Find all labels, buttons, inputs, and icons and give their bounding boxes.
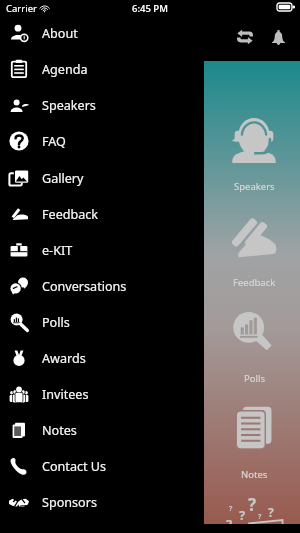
staticText: e-KIT	[42, 242, 73, 259]
button[interactable]: Feedback	[0, 196, 300, 232]
staticText: Agenda	[42, 61, 88, 78]
button[interactable]: Notes	[0, 412, 300, 448]
button[interactable]: Contact Us	[0, 448, 300, 484]
staticText: Feedback	[233, 276, 276, 289]
staticText: Polls	[42, 314, 70, 331]
button[interactable]: Polls	[204, 309, 300, 405]
staticText: ?	[226, 515, 233, 524]
button[interactable]: About	[0, 15, 300, 51]
staticText: Awards	[42, 350, 86, 367]
button[interactable]: Invitees	[0, 376, 300, 412]
button[interactable]: ?	[204, 501, 300, 524]
button[interactable]: Gallery	[0, 160, 300, 196]
button[interactable]: Agenda	[0, 51, 300, 87]
staticText: FAQ	[42, 133, 66, 150]
staticText: Contact Us	[42, 458, 107, 475]
staticText: 6:45 PM	[132, 2, 168, 15]
staticText: Speakers	[234, 180, 275, 193]
button[interactable]: e-KIT	[0, 232, 300, 268]
button[interactable]: Refresh	[237, 29, 253, 45]
button[interactable]: Sponsors	[0, 484, 300, 520]
staticText: Sponsors	[42, 494, 97, 511]
staticText: About	[42, 25, 78, 42]
staticText: Notes	[241, 468, 268, 481]
staticText: Feedback	[42, 206, 99, 223]
button[interactable]: Notes	[204, 405, 300, 501]
staticText: ?	[268, 504, 274, 520]
button[interactable]: Notifications	[270, 29, 287, 46]
staticText: Carrier	[6, 2, 37, 15]
staticText: Invitees	[42, 386, 89, 403]
staticText: ?	[258, 512, 262, 522]
staticText: Speakers	[42, 97, 96, 114]
button[interactable]: Awards	[0, 340, 300, 376]
button[interactable]: FAQ	[0, 123, 300, 159]
button[interactable]: Speakers	[204, 117, 300, 213]
staticText: ?	[239, 506, 246, 524]
staticText: ?	[248, 493, 257, 516]
staticText: ?	[229, 504, 233, 514]
button[interactable]: Polls	[0, 304, 300, 340]
button[interactable]: Speakers	[0, 87, 300, 123]
staticText: Conversations	[42, 278, 127, 295]
button[interactable]: Conversations	[0, 268, 300, 304]
button[interactable]: Feedback	[204, 213, 300, 309]
staticText: Gallery	[42, 170, 84, 187]
staticText: Polls	[244, 372, 265, 385]
staticText: Notes	[42, 422, 77, 439]
